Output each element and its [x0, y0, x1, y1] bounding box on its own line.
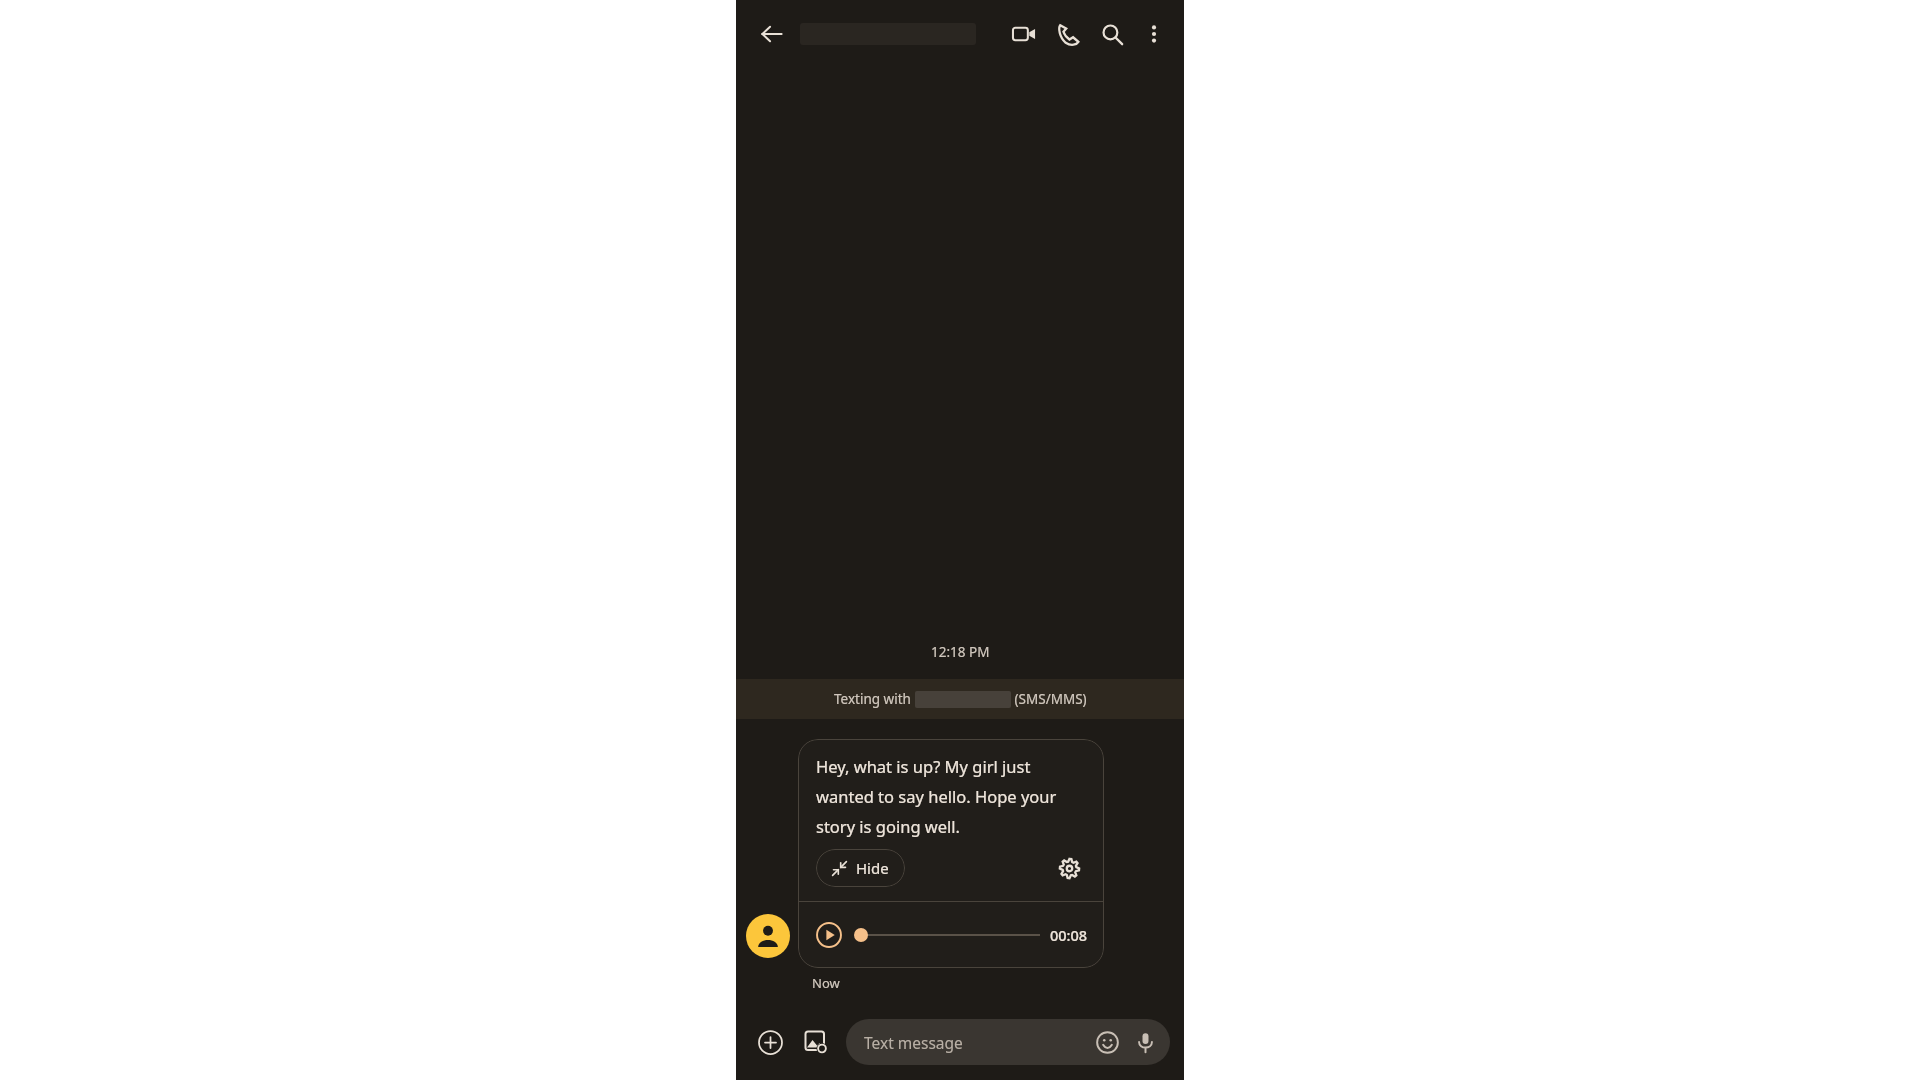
button[interactable]: Emoji	[1090, 1025, 1124, 1059]
button[interactable]: Contact avatar	[746, 914, 790, 958]
staticText: Hey, what is up? My girl just wanted to …	[816, 755, 1086, 837]
button[interactable]: Back	[752, 14, 792, 54]
staticText: 12:18 PM	[931, 643, 990, 661]
staticText: Now	[812, 974, 840, 992]
staticText: Hide	[856, 858, 889, 878]
button[interactable]: More options	[1134, 14, 1174, 54]
button[interactable]: Hide	[816, 849, 905, 887]
staticText: (SMS/MMS)	[1011, 690, 1087, 708]
button[interactable]: Play	[814, 920, 844, 950]
button[interactable]: Add attachment	[750, 1022, 790, 1062]
button[interactable]: Search	[1090, 12, 1134, 56]
button[interactable]: Voice input	[1128, 1025, 1162, 1059]
button[interactable]: Call	[1046, 12, 1090, 56]
button[interactable]: Video call	[1002, 12, 1046, 56]
staticText: Text message	[864, 1032, 963, 1053]
button[interactable]: Gallery	[796, 1022, 836, 1062]
button[interactable]: Settings	[1052, 851, 1086, 885]
button[interactable]: Text message	[846, 1019, 1170, 1065]
staticText: Texting with	[834, 690, 915, 708]
staticText: 00:08	[1050, 925, 1088, 945]
